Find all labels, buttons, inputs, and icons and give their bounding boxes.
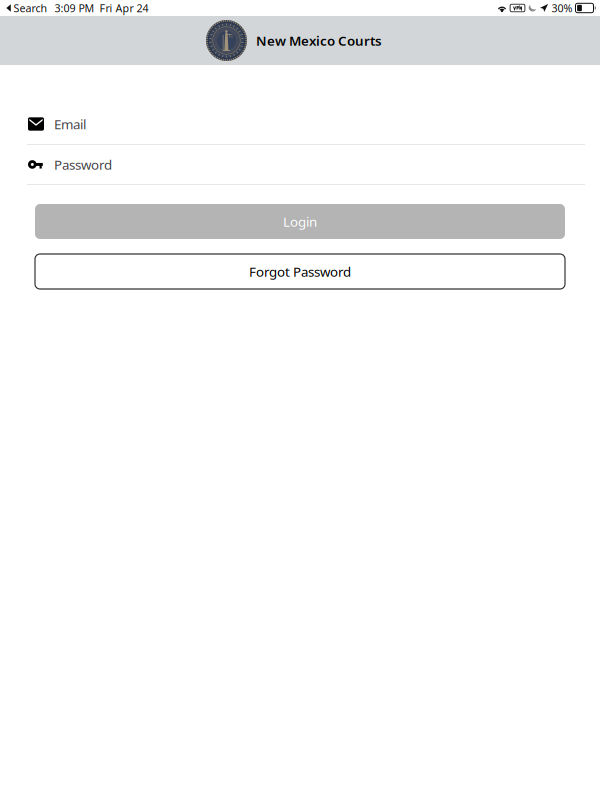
staticText: Fri Apr 24 — [99, 1, 148, 15]
staticText: Email — [54, 115, 86, 133]
staticText: 3:09 PM — [54, 1, 94, 15]
button[interactable]: Password — [0, 145, 600, 184]
button[interactable]: Email — [0, 104, 600, 144]
staticText: 30% — [552, 1, 573, 15]
button[interactable]: Back to Search — [6, 1, 47, 15]
staticText: Password — [54, 156, 112, 173]
staticText: New Mexico Courts — [256, 32, 382, 49]
staticText: Forgot Password — [249, 263, 351, 280]
staticText: Login — [283, 213, 317, 230]
staticText: Search — [13, 1, 47, 15]
button[interactable]: Login — [35, 204, 565, 239]
button[interactable]: Forgot Password — [35, 254, 565, 289]
